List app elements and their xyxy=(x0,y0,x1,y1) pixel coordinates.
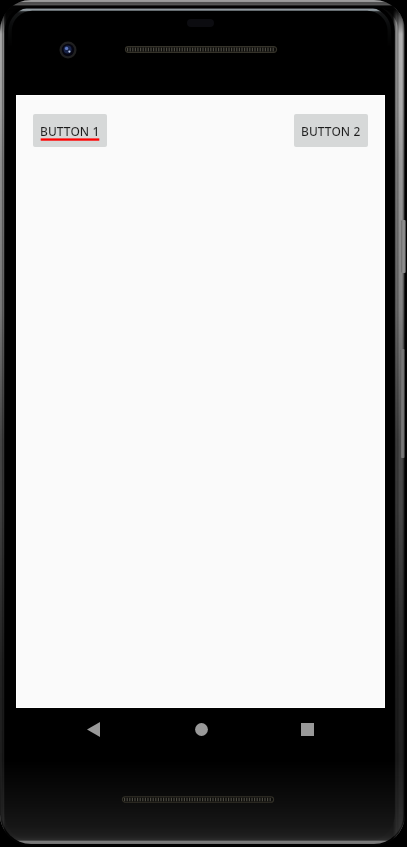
button[interactable]: BUTTON 2 xyxy=(294,114,368,147)
staticText: BUTTON 2 xyxy=(301,123,361,139)
button[interactable]: Recents xyxy=(287,709,327,749)
staticText: BUTTON 1 xyxy=(40,123,100,139)
button[interactable]: BUTTON 1 xyxy=(33,114,107,147)
button[interactable]: Home xyxy=(181,709,221,749)
button[interactable]: Back xyxy=(73,709,113,749)
